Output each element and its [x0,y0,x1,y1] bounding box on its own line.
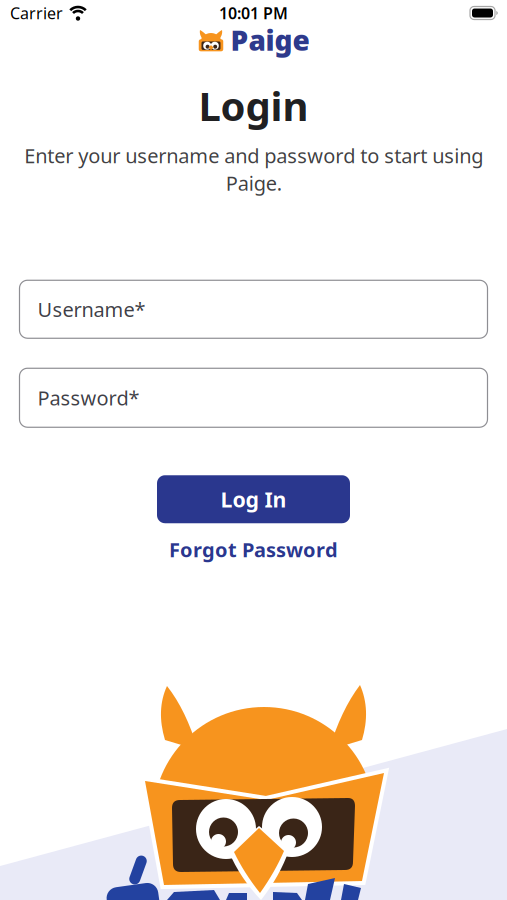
staticText: Enter your username and password to star… [24,142,483,196]
staticText: Carrier [10,2,63,24]
button[interactable]: Log In [157,475,350,523]
staticText: Forgot Password [169,536,338,563]
staticText: 10:01 PM [219,2,288,24]
staticText: Log In [220,485,286,513]
button[interactable]: Forgot Password [169,536,338,563]
staticText: Login [198,79,308,132]
staticText: Username* [37,296,145,323]
staticText: Paige [230,21,309,59]
button[interactable]: Username* [19,280,487,338]
staticText: Password* [37,384,139,411]
button[interactable]: Password* [19,368,487,427]
